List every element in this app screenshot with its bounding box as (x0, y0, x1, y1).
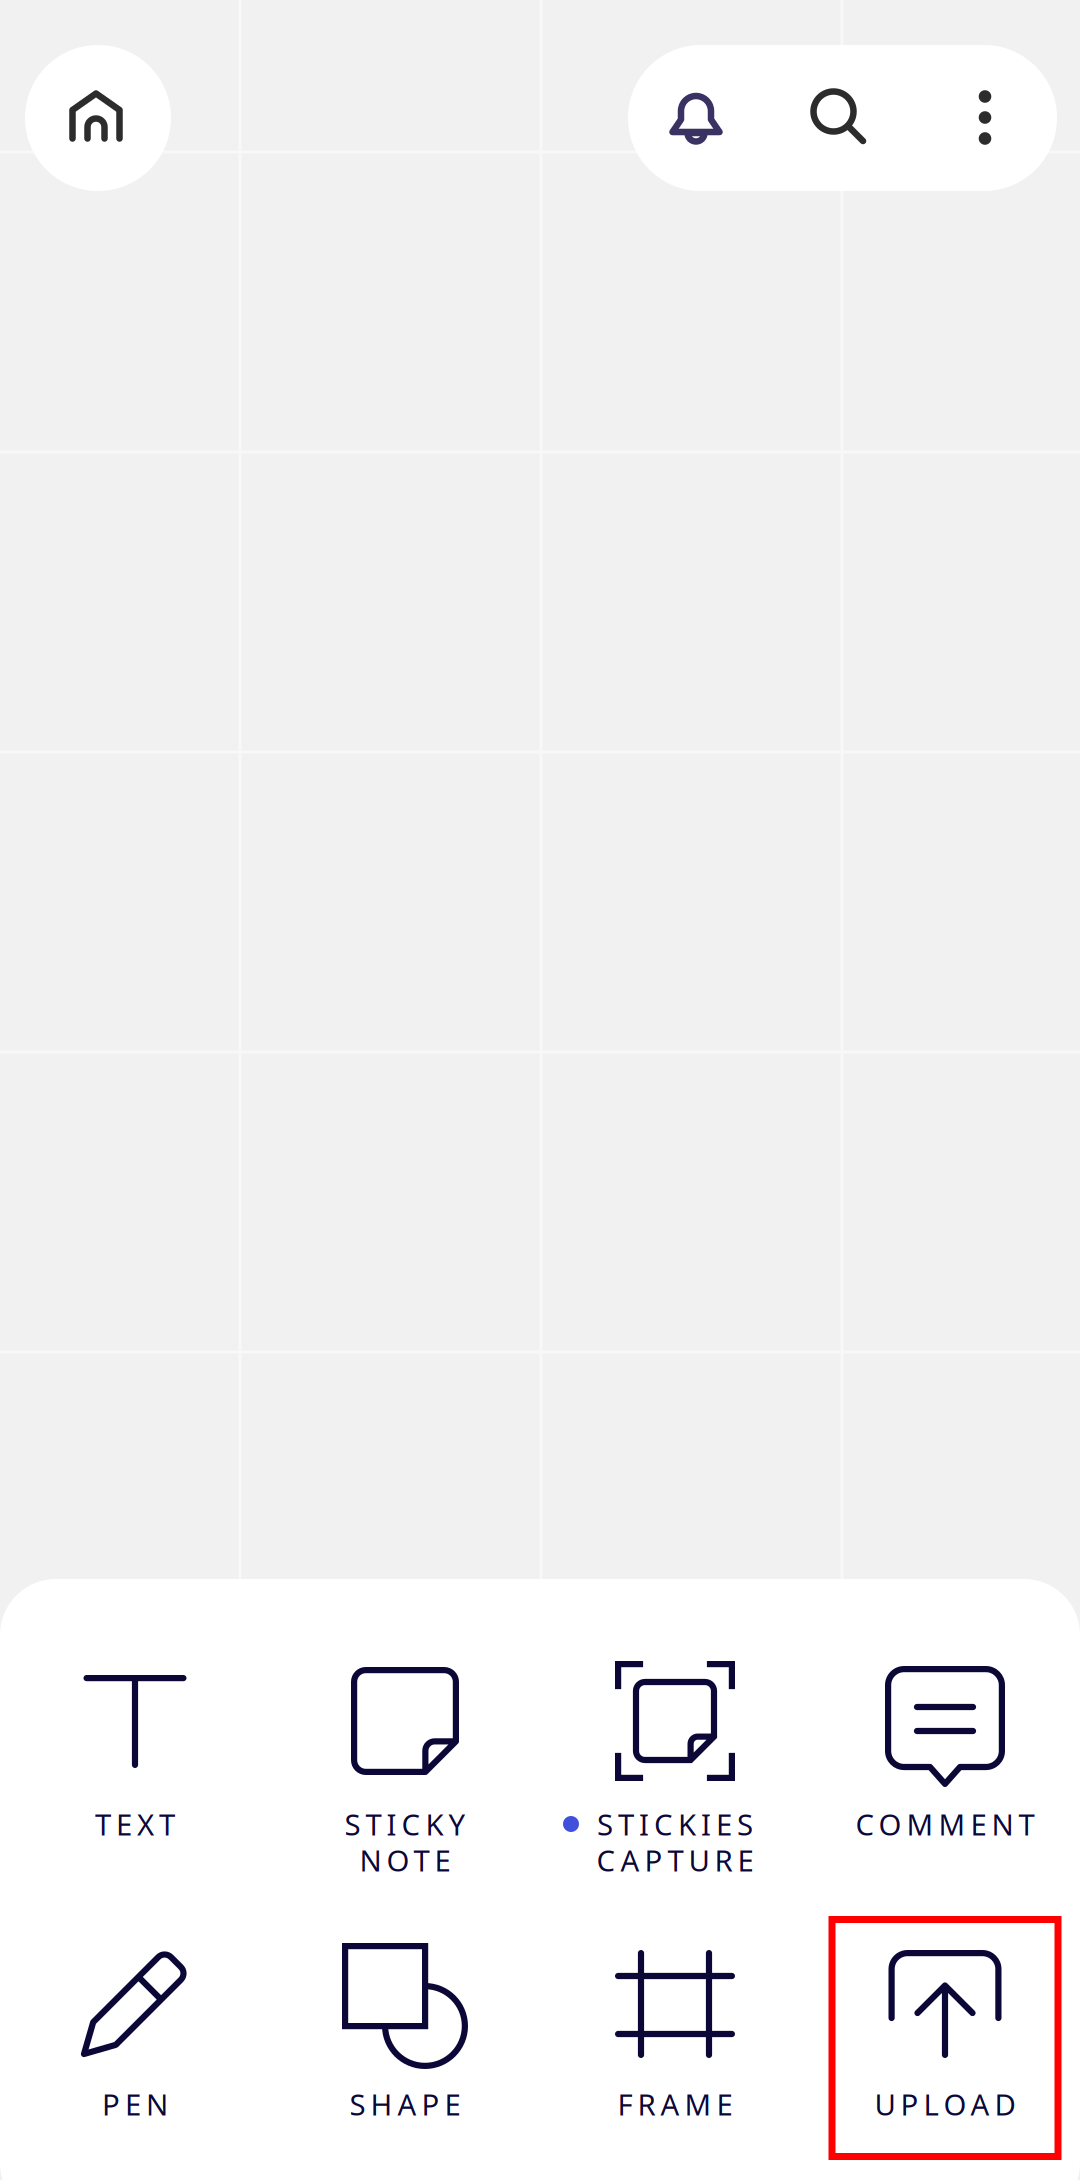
button[interactable]: More options (927, 45, 1049, 191)
button[interactable]: Search (777, 45, 899, 191)
staticText: FRAME (617, 2084, 732, 2123)
button[interactable]: UPLOAD (828, 1916, 1061, 2160)
staticText: NOTE (359, 1840, 450, 1879)
staticText: COMMENT (855, 1804, 1034, 1843)
staticText: STICKY (344, 1804, 465, 1843)
button[interactable]: PEN (18, 1916, 251, 2160)
button[interactable]: FRAME (558, 1916, 791, 2160)
staticText: PEN (102, 2084, 168, 2123)
staticText: UPLOAD (874, 2084, 1015, 2123)
button[interactable]: SHAPE (288, 1916, 521, 2160)
button[interactable]: COMMENT (828, 1641, 1061, 1881)
staticText: SHAPE (349, 2084, 460, 2123)
button[interactable]: Home (25, 45, 171, 191)
staticText: STICKIES (597, 1804, 753, 1843)
button[interactable]: STICKIES (558, 1641, 791, 1881)
button[interactable]: TEXT (18, 1641, 251, 1881)
staticText: CAPTURE (596, 1840, 753, 1879)
button[interactable]: Notifications (635, 45, 757, 191)
staticText: TEXT (95, 1804, 175, 1843)
button[interactable]: STICKY (288, 1641, 521, 1881)
